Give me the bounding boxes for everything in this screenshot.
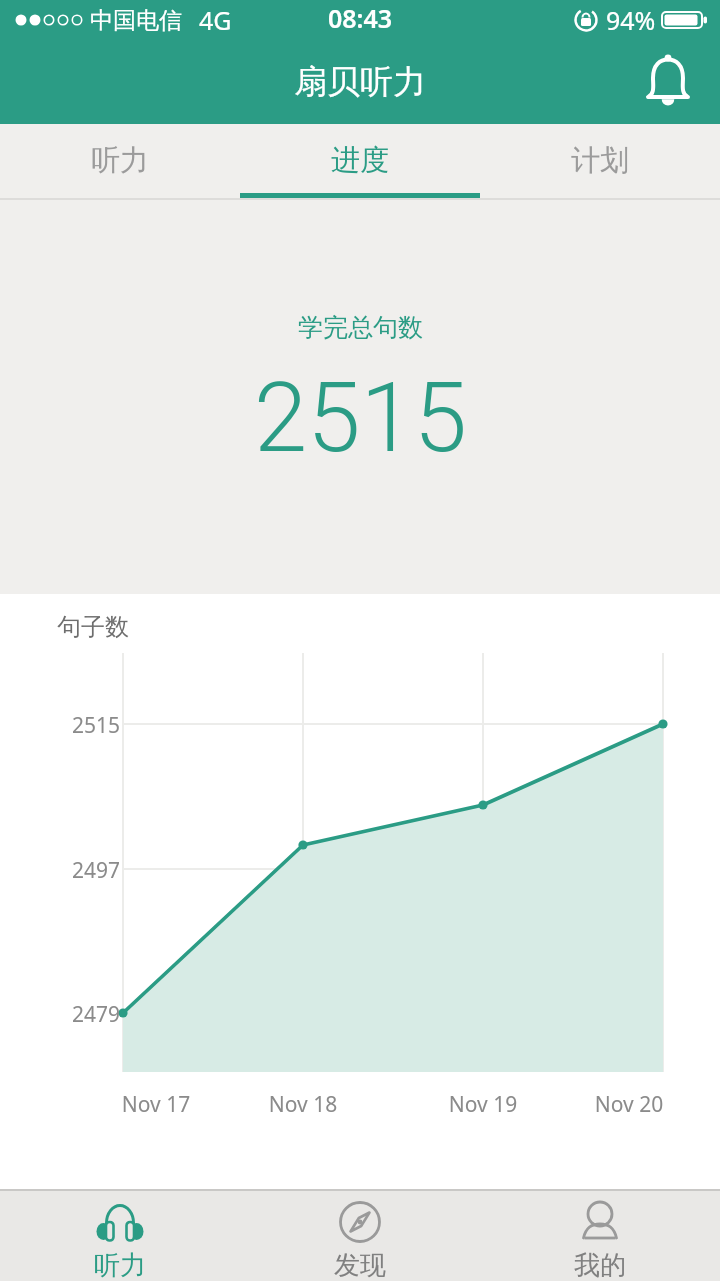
staticText: 94% [606, 3, 656, 37]
staticText: Nov 17 [96, 1090, 216, 1119]
staticText: Nov 20 [569, 1090, 689, 1119]
button[interactable]: 听力 [0, 124, 240, 200]
staticText: 听力 [94, 1249, 146, 1281]
staticText: 2497 [20, 856, 120, 885]
staticText: 08:43 [328, 1, 393, 35]
staticText: 2479 [20, 1000, 120, 1029]
button[interactable]: 进度 [240, 124, 480, 200]
button[interactable] [644, 58, 692, 106]
button[interactable]: 听力 [0, 1191, 240, 1281]
button[interactable]: 计划 [480, 124, 720, 200]
button[interactable]: 发现 [240, 1191, 480, 1281]
staticText: 进度 [331, 142, 389, 179]
staticText: 句子数 [57, 612, 129, 642]
staticText: Nov 18 [243, 1090, 363, 1119]
staticText: 2515 [254, 362, 467, 475]
staticText: 扇贝听力 [294, 61, 426, 103]
staticText: 学完总句数 [298, 312, 423, 343]
staticText: 发现 [334, 1249, 386, 1281]
button[interactable]: 我的 [480, 1191, 720, 1281]
staticText: Nov 19 [423, 1090, 543, 1119]
staticText: 计划 [571, 142, 629, 179]
staticText: 2515 [20, 711, 120, 740]
staticText: 4G [199, 3, 232, 37]
staticText: 中国电信 [90, 6, 182, 35]
staticText: 听力 [91, 142, 149, 179]
staticText: 我的 [574, 1249, 626, 1281]
